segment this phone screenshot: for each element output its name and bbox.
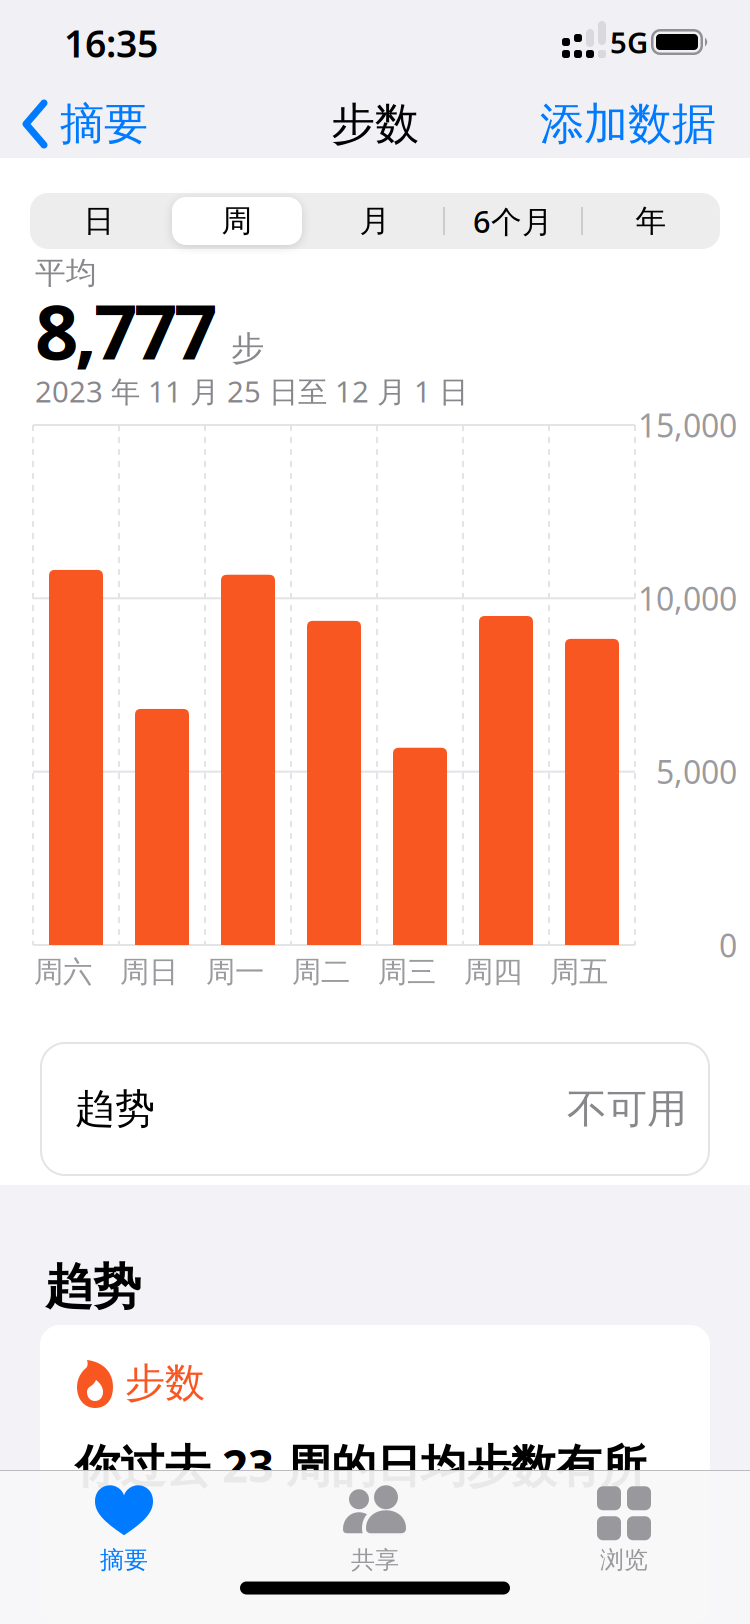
staticText: 2023 年 11 月 25 日至 12 月 1 日: [35, 371, 468, 410]
button[interactable]: 共享: [300, 1478, 450, 1582]
staticText: 月: [359, 202, 390, 240]
button[interactable]: 周: [168, 193, 306, 249]
staticText: 周六: [34, 954, 92, 990]
staticText: 周一: [206, 954, 264, 990]
staticText: 摘要: [60, 97, 148, 151]
staticText: 年: [635, 202, 666, 240]
staticText: 趋势: [75, 1084, 155, 1133]
staticText: 10,000: [638, 577, 737, 620]
staticText: 周四: [464, 954, 522, 990]
staticText: 浏览: [600, 1545, 648, 1575]
staticText: 共享: [351, 1545, 399, 1575]
staticText: 步数: [125, 1358, 205, 1407]
staticText: 周: [221, 202, 252, 240]
button[interactable]: 趋势: [40, 1042, 710, 1176]
staticText: 5,000: [656, 750, 737, 793]
staticText: 周五: [550, 954, 608, 990]
button[interactable]: 日: [30, 193, 168, 249]
staticText: 5G: [610, 22, 648, 61]
button[interactable]: 月: [306, 193, 444, 249]
staticText: 不可用: [567, 1084, 687, 1133]
staticText: 日: [83, 202, 114, 240]
staticText: 15,000: [638, 404, 737, 446]
staticText: 16:35: [64, 18, 158, 68]
staticText: 0: [719, 924, 737, 966]
button[interactable]: 6个月: [444, 193, 582, 249]
staticText: 你过去 23 周的日均步数有所: [75, 1435, 646, 1495]
button[interactable]: 摘要: [49, 1478, 199, 1582]
staticText: 添加数据: [540, 97, 716, 151]
button[interactable]: 步数: [40, 1325, 710, 1624]
staticText: 趋势: [45, 1257, 141, 1316]
staticText: 周二: [292, 954, 350, 990]
staticText: 步: [231, 328, 264, 369]
staticText: 8,777: [35, 279, 217, 380]
button[interactable]: 添加数据: [540, 97, 716, 151]
staticText: 平均: [35, 254, 97, 292]
button[interactable]: 返回摘要: [22, 97, 148, 151]
button[interactable]: 年: [582, 193, 720, 249]
staticText: 周日: [120, 954, 178, 990]
staticText: 步数: [331, 97, 419, 151]
button[interactable]: 浏览: [549, 1478, 699, 1582]
staticText: 周三: [378, 954, 436, 990]
staticText: 摘要: [100, 1545, 148, 1575]
staticText: 6个月: [473, 201, 553, 241]
